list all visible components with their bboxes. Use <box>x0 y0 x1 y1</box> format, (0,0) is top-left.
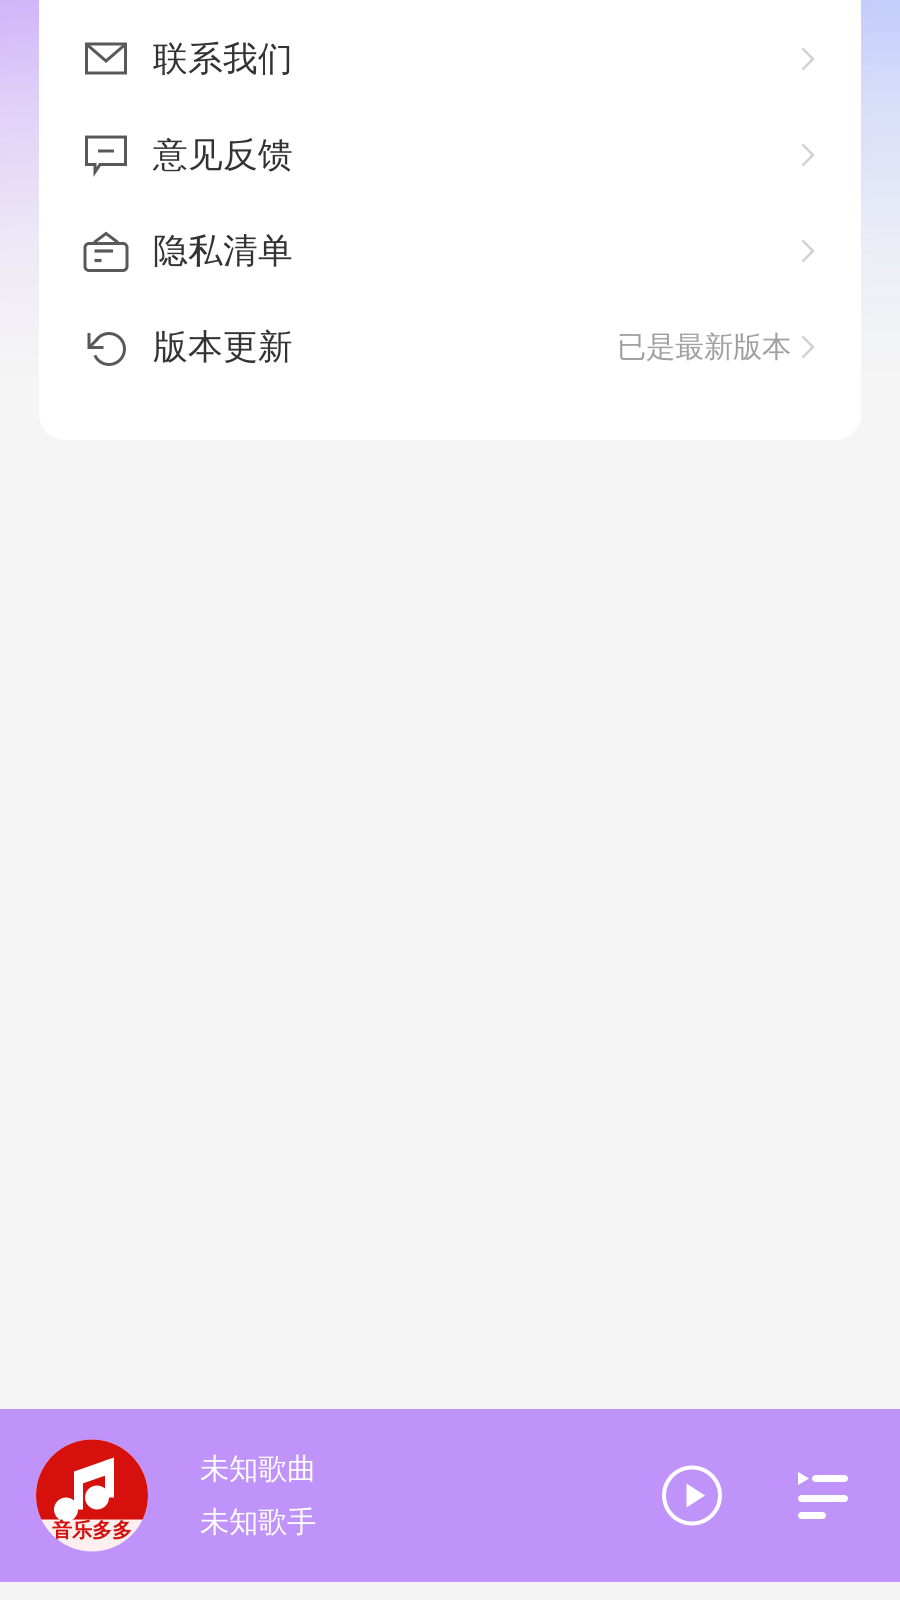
staticText: 隐私清单 <box>153 230 293 272</box>
button[interactable]: Now playing artwork <box>36 1439 148 1551</box>
button[interactable]: Playlist <box>798 1473 848 1517</box>
button[interactable]: 联系我们 <box>39 11 861 107</box>
staticText: 未知歌手 <box>200 1504 316 1540</box>
button[interactable]: 隐私清单 <box>39 203 861 299</box>
staticText: 未知歌曲 <box>200 1451 316 1487</box>
button[interactable]: 版本更新 <box>39 299 861 395</box>
staticText: 联系我们 <box>153 38 293 80</box>
staticText: 音乐多多 <box>52 1518 132 1542</box>
staticText: 意见反馈 <box>153 134 293 176</box>
button[interactable]: Play <box>664 1467 720 1523</box>
button[interactable]: 意见反馈 <box>39 107 861 203</box>
staticText: 已是最新版本 <box>617 329 791 365</box>
staticText: 版本更新 <box>153 326 293 368</box>
